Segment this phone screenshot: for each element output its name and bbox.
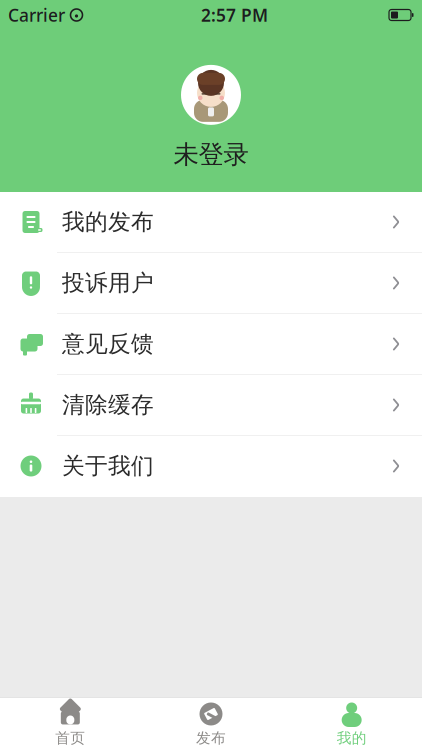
button[interactable]: 首页 (0, 698, 141, 750)
button[interactable]: 投诉用户 (0, 253, 422, 314)
staticText: Carrier (8, 3, 65, 26)
staticText: 发布 (196, 729, 226, 747)
staticText: 意见反馈 (62, 330, 154, 358)
staticText: 清除缓存 (62, 391, 154, 419)
button[interactable]: 我的发布 (0, 192, 422, 253)
button[interactable]: 清除缓存 (0, 375, 422, 436)
staticText: 我的 (337, 729, 367, 747)
button[interactable]: 发布 (141, 698, 281, 750)
staticText: 关于我们 (62, 452, 154, 480)
staticText: 首页 (55, 729, 85, 747)
button[interactable]: 意见反馈 (0, 314, 422, 375)
button[interactable]: 未登录，点击登录 (173, 65, 248, 170)
staticText: 投诉用户 (62, 269, 154, 297)
button[interactable]: 我的 (281, 698, 422, 750)
staticText: 我的发布 (62, 208, 154, 236)
button[interactable]: 关于我们 (0, 436, 422, 497)
staticText: 未登录 (173, 139, 248, 170)
staticText: 2:57 PM (201, 3, 268, 26)
